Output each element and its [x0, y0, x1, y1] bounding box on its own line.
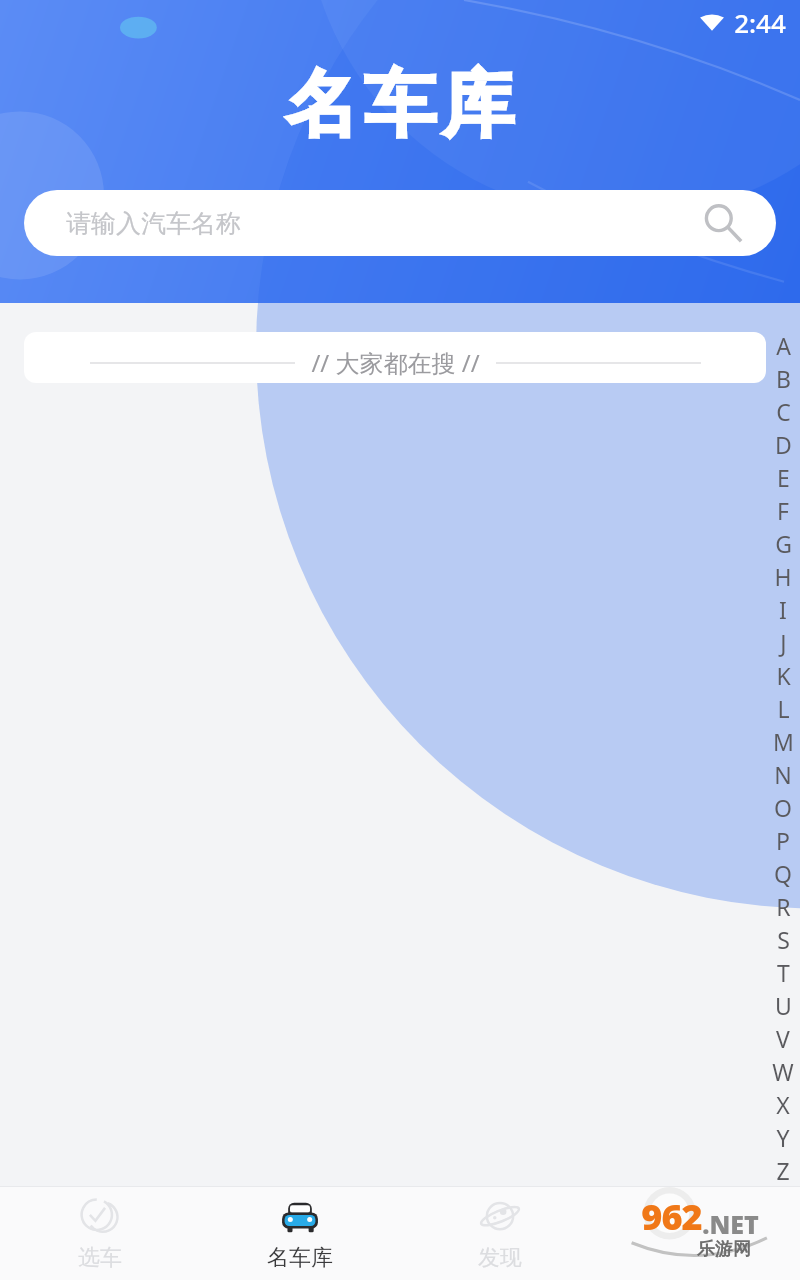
button[interactable]: Z — [766, 1154, 800, 1187]
staticText: D — [775, 429, 792, 460]
staticText: L — [777, 693, 790, 724]
button[interactable]: F — [766, 494, 800, 527]
button[interactable]: J — [766, 626, 800, 659]
button[interactable]: M — [766, 725, 800, 758]
button[interactable]: 选车 — [0, 1187, 200, 1280]
button[interactable]: I — [766, 593, 800, 626]
button[interactable]: Y — [766, 1121, 800, 1154]
staticText: 2:44 — [734, 5, 786, 40]
button[interactable]: X — [766, 1088, 800, 1121]
staticText: 发现 — [478, 1244, 522, 1272]
staticText: K — [776, 660, 791, 691]
button[interactable]: R — [766, 890, 800, 923]
button[interactable]: A — [766, 329, 800, 362]
staticText: 名车库 — [267, 1244, 333, 1272]
staticText: V — [776, 1023, 790, 1054]
staticText: T — [777, 957, 790, 988]
staticText: F — [777, 495, 789, 526]
button[interactable]: N — [766, 758, 800, 791]
button[interactable]: T — [766, 956, 800, 989]
staticText: O — [774, 792, 792, 823]
staticText: Y — [776, 1122, 790, 1153]
button[interactable]: C — [766, 395, 800, 428]
staticText: S — [777, 924, 790, 955]
other: 名车库 — [277, 1195, 323, 1241]
button[interactable]: V — [766, 1022, 800, 1055]
staticText: A — [776, 330, 791, 361]
staticText: 名车库 — [283, 60, 517, 151]
staticText: M — [773, 726, 794, 757]
staticText: 选车 — [78, 1244, 122, 1272]
button[interactable]: 发现 — [400, 1187, 600, 1280]
staticText: H — [774, 561, 792, 592]
staticText: B — [776, 363, 791, 394]
staticText: I — [779, 594, 787, 625]
staticText: C — [776, 396, 791, 427]
button[interactable]: U — [766, 989, 800, 1022]
staticText: U — [775, 990, 792, 1021]
button[interactable]: 请输入汽车名称 — [24, 190, 776, 256]
staticText: R — [776, 891, 791, 922]
button[interactable]: H — [766, 560, 800, 593]
other: 选车 — [77, 1195, 123, 1241]
button[interactable]: K — [766, 659, 800, 692]
staticText: .NET — [702, 1207, 759, 1241]
button[interactable]: W — [766, 1055, 800, 1088]
button[interactable]: S — [766, 923, 800, 956]
staticText: J — [780, 627, 787, 658]
other: 发现 — [477, 1195, 523, 1241]
staticText: W — [772, 1056, 794, 1087]
button[interactable]: P — [766, 824, 800, 857]
button[interactable]: 名车库 — [200, 1187, 400, 1280]
staticText: Q — [774, 858, 792, 889]
staticText: G — [775, 528, 792, 559]
button[interactable]: L — [766, 692, 800, 725]
staticText: 请输入汽车名称 — [66, 208, 241, 239]
staticText: P — [776, 825, 790, 856]
staticText: Z — [776, 1155, 790, 1186]
staticText: 乐游网 — [697, 1238, 751, 1261]
staticText: N — [774, 759, 792, 790]
button[interactable]: Q — [766, 857, 800, 890]
button[interactable]: E — [766, 461, 800, 494]
button[interactable]: D — [766, 428, 800, 461]
staticText: X — [776, 1089, 790, 1120]
button[interactable]: G — [766, 527, 800, 560]
staticText: E — [777, 462, 790, 493]
staticText: // 大家都在搜 // — [311, 346, 480, 379]
button[interactable]: O — [766, 791, 800, 824]
button[interactable]: B — [766, 362, 800, 395]
staticText: 962 — [641, 1192, 702, 1241]
